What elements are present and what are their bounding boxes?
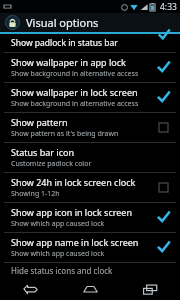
staticText: Visual options	[26, 15, 99, 30]
staticText: Show padlock in status bar	[11, 37, 118, 49]
button[interactable]: Toggle Show app name in lock screen	[157, 241, 170, 254]
staticText: Show pattern	[11, 116, 68, 128]
button[interactable]: Visual options	[0, 13, 180, 32]
button[interactable]: Show 24h in lock screen clock	[0, 173, 180, 202]
button[interactable]: Toggle show padlock in status bar	[158, 29, 170, 41]
staticText: Show background in alternative access	[11, 99, 139, 109]
button[interactable]: Toggle Show wallpaper in lock screen	[157, 91, 170, 104]
staticText: Show wallpaper in lock screen	[11, 86, 138, 98]
button[interactable]: Toggle Show app icon in lock screen	[157, 211, 170, 224]
button[interactable]: Hide status icons and clock	[0, 263, 180, 275]
button[interactable]: Show wallpaper in lock screen	[0, 83, 180, 112]
button[interactable]: Show padlock in status bar	[0, 34, 180, 52]
staticText: Hide status icons and clock	[11, 265, 113, 275]
button[interactable]: Home	[60, 278, 120, 300]
button[interactable]: Show app name in lock screen	[0, 233, 180, 262]
staticText: Showing 1-12h	[11, 189, 60, 199]
staticText: Show app name in lock screen	[11, 236, 139, 248]
staticText: Show which app caused lock	[11, 249, 105, 259]
button[interactable]: Status bar icon	[0, 143, 180, 172]
button[interactable]: Show pattern	[0, 113, 180, 142]
staticText: Customize padlock color	[11, 159, 92, 169]
button[interactable]: Toggle Show wallpaper in app lock	[157, 61, 170, 74]
staticText: Show 24h in lock screen clock	[11, 176, 136, 188]
staticText: 4:33	[160, 1, 177, 13]
button[interactable]: Toggle Show pattern	[157, 121, 170, 134]
button[interactable]: Back	[0, 278, 60, 300]
staticText: Show pattern as it's being drawn	[11, 129, 119, 139]
button[interactable]: Recent apps	[120, 278, 180, 300]
staticText: Show app icon in lock screen	[11, 206, 132, 218]
button[interactable]: Toggle Show 24h in lock screen clock	[157, 181, 170, 194]
staticText: Show wallpaper in app lock	[11, 56, 126, 68]
button[interactable]: Show app icon in lock screen	[0, 203, 180, 232]
staticText: Show which app caused lock	[11, 219, 105, 229]
button[interactable]: Show wallpaper in app lock	[0, 53, 180, 82]
staticText: Status bar icon	[11, 146, 74, 158]
staticText: Show background in alternative access	[11, 69, 139, 79]
